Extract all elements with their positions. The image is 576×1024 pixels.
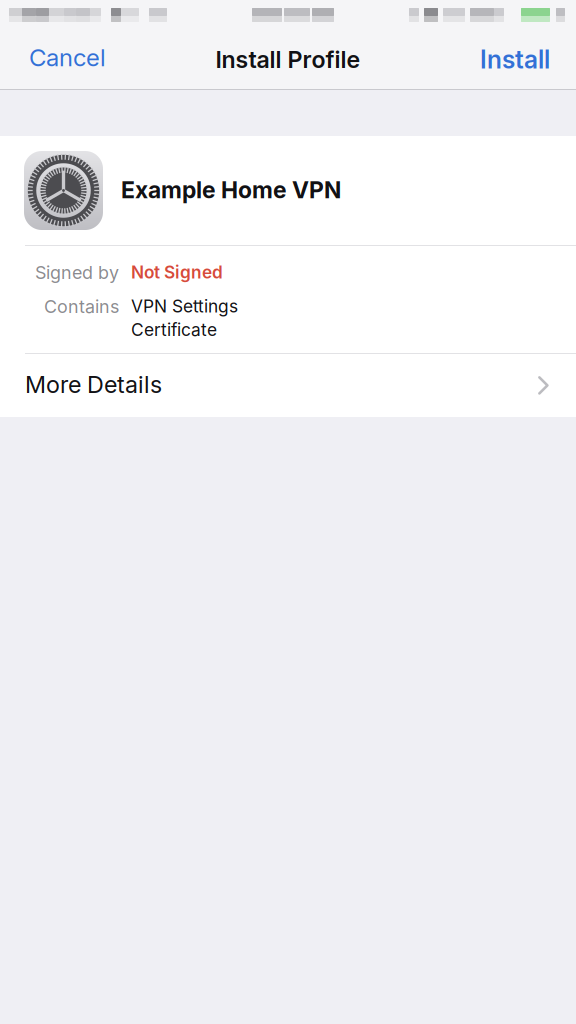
staticText: Certificate <box>131 319 217 340</box>
staticText: Cancel <box>29 43 106 72</box>
staticText: Install <box>480 45 550 74</box>
staticText: VPN Settings <box>131 296 238 316</box>
staticText: Install Profile <box>215 46 360 73</box>
staticText: Not Signed <box>131 262 223 282</box>
staticText: Example Home VPN <box>121 176 341 204</box>
staticText: Signed by <box>35 262 119 283</box>
button[interactable]: Cancel <box>0 39 106 86</box>
button[interactable]: Install <box>480 39 576 86</box>
staticText: More Details <box>25 371 162 398</box>
button[interactable]: More Details <box>0 354 576 417</box>
staticText: Contains <box>44 296 119 317</box>
